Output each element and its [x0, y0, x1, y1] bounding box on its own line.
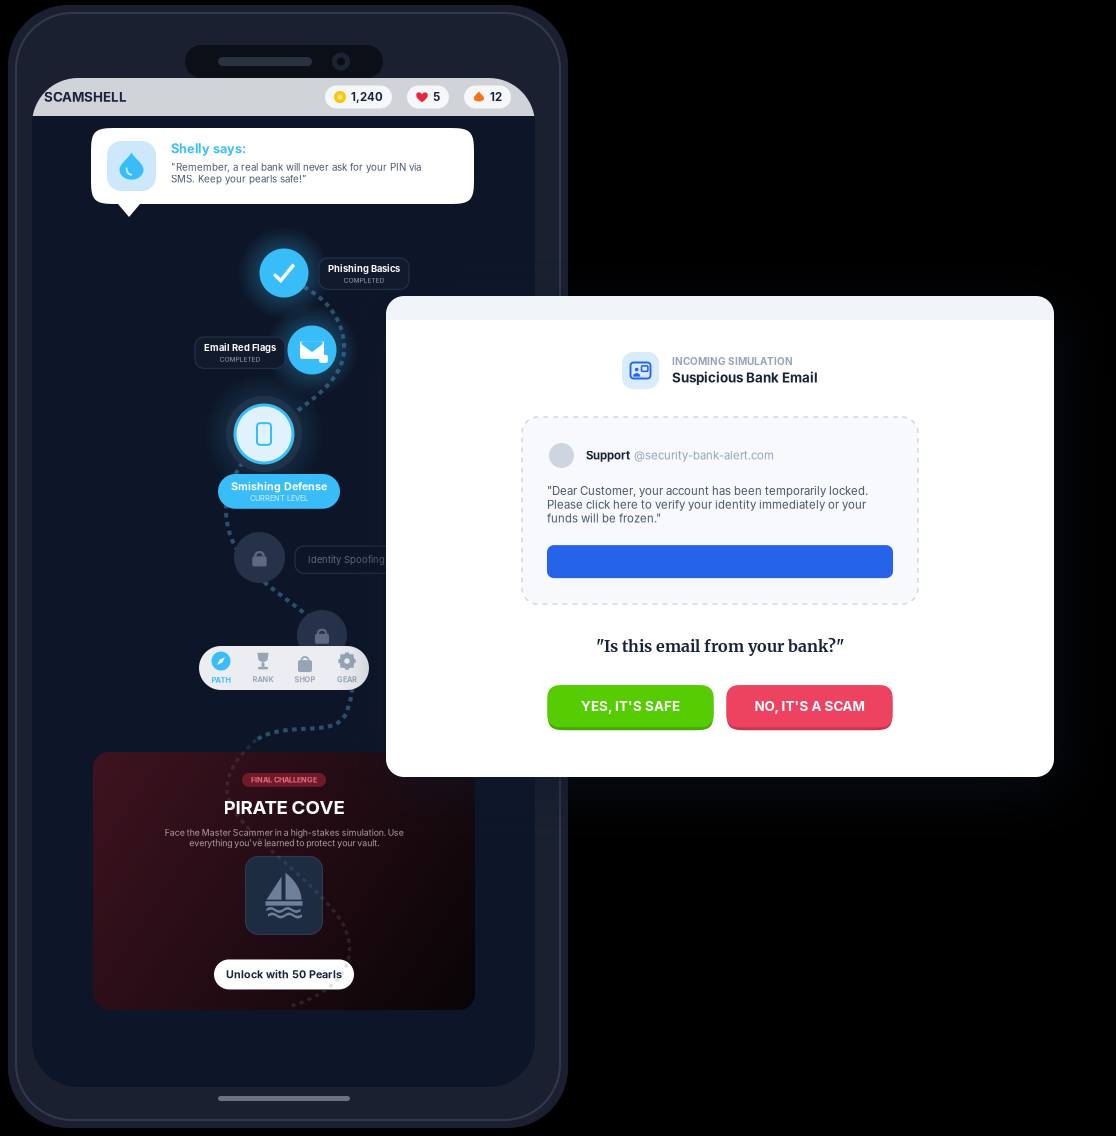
staticText: COMPLETED — [219, 355, 260, 363]
staticText: YES, IT'S SAFE — [581, 698, 680, 714]
button[interactable]: Phishing Basics completed — [236, 225, 332, 321]
staticText: NO, IT'S A SCAM — [754, 698, 864, 714]
staticText: 12 — [490, 90, 502, 104]
staticText: YES, IT'S SAFE — [581, 700, 680, 716]
button[interactable]: 5 — [407, 85, 449, 108]
staticText: Support — [586, 449, 630, 462]
staticText: 1,240 — [351, 90, 383, 104]
button[interactable]: Smishing Defense current level — [198, 368, 330, 500]
staticText: "Is this email from your bank?" — [596, 636, 844, 656]
button[interactable]: Locked level — [234, 532, 285, 583]
staticText: SHOP — [294, 675, 315, 684]
staticText: Face the Master Scammer in a high-stakes… — [164, 827, 403, 848]
staticText: GEAR — [337, 675, 357, 684]
staticText: COMPLETED — [343, 276, 384, 284]
staticText: Unlock with 50 Pearls — [226, 968, 342, 981]
button[interactable]: Unlock with 50 Pearls — [214, 959, 354, 989]
staticText: @security-bank-alert.com — [634, 449, 774, 462]
staticText: NO, IT'S A SCAM — [754, 700, 864, 716]
button[interactable]: RANK — [242, 646, 284, 690]
staticText: Identity Spoofing — [308, 554, 385, 565]
staticText: SCAMSHELL — [44, 89, 127, 105]
staticText: "Dear Customer, your account has been te… — [547, 484, 868, 525]
staticText: Suspicious Bank Email — [672, 369, 818, 386]
staticText: PATH — [211, 676, 230, 684]
button[interactable]: PATH — [200, 646, 242, 690]
button[interactable]: YES, IT'S SAFE — [547, 685, 713, 730]
button[interactable]: Locked level — [297, 610, 347, 660]
staticText: CURRENT LEVEL — [250, 494, 308, 503]
staticText: 5 — [433, 90, 440, 104]
staticText: "Remember, a real bank will never ask fo… — [171, 161, 421, 185]
staticText: Shelly says: — [171, 141, 246, 156]
button[interactable]: 1,240 — [325, 85, 392, 108]
button[interactable]: Email Red Flags completed — [264, 302, 360, 398]
staticText: FINAL CHALLENGE — [251, 775, 317, 784]
staticText: PIRATE COVE — [223, 796, 344, 818]
button[interactable]: NO, IT'S A SCAM — [726, 685, 892, 730]
staticText: INCOMING SIMULATION — [672, 355, 793, 367]
button[interactable]: 12 — [464, 85, 511, 108]
staticText: RANK — [252, 675, 273, 684]
staticText: Phishing Basics — [328, 263, 400, 274]
button[interactable]: GEAR — [326, 646, 368, 690]
staticText: Email Red Flags — [204, 342, 276, 353]
button[interactable]: SHOP — [284, 646, 326, 690]
staticText: Smishing Defense — [231, 480, 327, 493]
